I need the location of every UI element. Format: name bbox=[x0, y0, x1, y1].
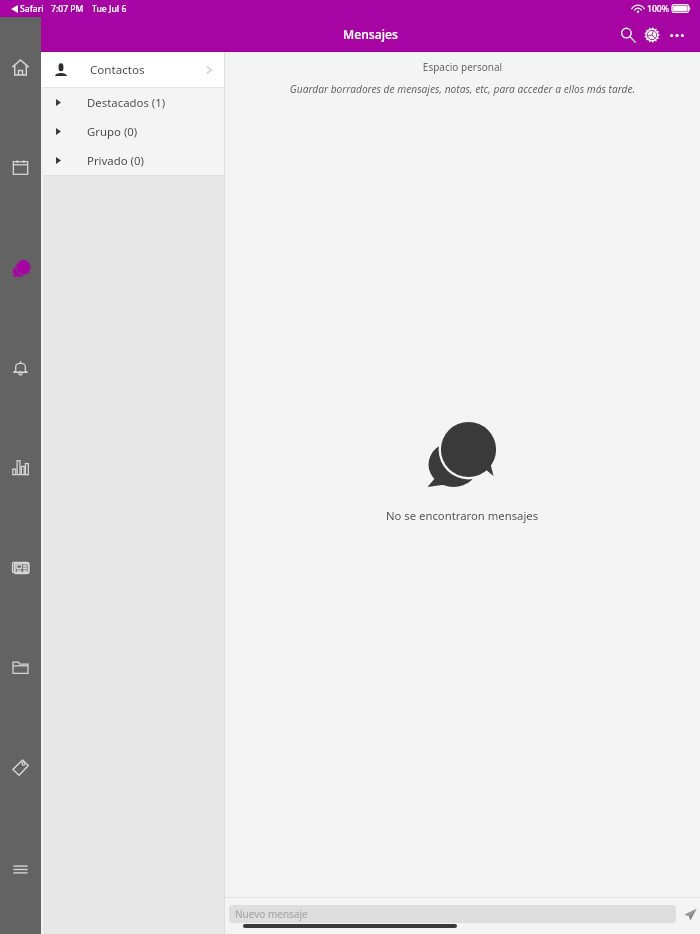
button[interactable]: Notifications bbox=[8, 355, 33, 380]
button[interactable]: News bbox=[8, 555, 33, 580]
staticText: 7:07 PM bbox=[51, 3, 84, 15]
staticText: Espacio personal bbox=[225, 60, 700, 74]
staticText: Guardar borradores de mensajes, notas, e… bbox=[225, 82, 700, 96]
button[interactable]: Privado (0) bbox=[41, 146, 225, 175]
button[interactable]: Grupo (0) bbox=[41, 117, 225, 146]
button[interactable]: Contactos bbox=[41, 52, 225, 87]
button[interactable]: Messages bbox=[8, 255, 33, 280]
button[interactable]: More options bbox=[664, 20, 689, 50]
button[interactable]: Nuevo mensaje bbox=[229, 905, 676, 923]
button[interactable]: Calendar bbox=[8, 155, 33, 180]
button[interactable]: Settings bbox=[640, 20, 664, 50]
button[interactable]: Destacados (1) bbox=[41, 88, 225, 117]
staticText: Tue Jul 6 bbox=[92, 3, 127, 15]
staticText: Mensajes bbox=[41, 26, 700, 43]
button[interactable]: Search bbox=[616, 20, 640, 50]
staticText: Destacados (1) bbox=[87, 95, 166, 111]
button[interactable]: Menu bbox=[8, 857, 33, 882]
staticText: Nuevo mensaje bbox=[235, 907, 308, 921]
button[interactable]: Tags bbox=[8, 755, 33, 780]
button[interactable]: Files bbox=[8, 655, 33, 680]
staticText: No se encontraron mensajes bbox=[386, 508, 539, 523]
staticText: Contactos bbox=[90, 62, 145, 78]
button[interactable]: Home bbox=[8, 55, 33, 80]
button[interactable]: Statistics bbox=[8, 455, 33, 480]
button[interactable]: Send bbox=[683, 905, 697, 923]
staticText: Privado (0) bbox=[87, 153, 144, 169]
staticText: Grupo (0) bbox=[87, 124, 138, 140]
staticText: Safari bbox=[20, 3, 44, 15]
staticText: 100% bbox=[647, 3, 670, 15]
